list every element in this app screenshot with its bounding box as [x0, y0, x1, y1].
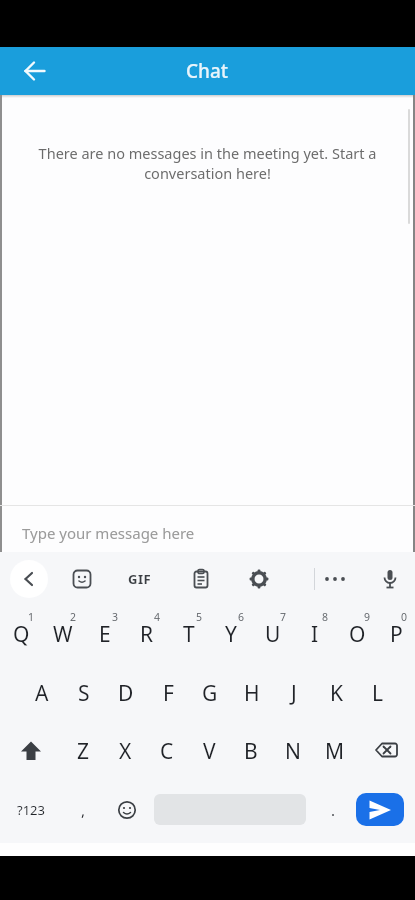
staticText: GIF	[128, 570, 152, 588]
staticText: 7	[280, 610, 287, 624]
button[interactable]: T	[168, 605, 210, 664]
staticText: 6	[238, 610, 245, 624]
button[interactable]	[315, 559, 355, 599]
button[interactable]	[10, 560, 48, 598]
button[interactable]: A	[21, 664, 63, 722]
button[interactable]: X	[104, 722, 146, 780]
button[interactable]: V	[188, 722, 230, 780]
button[interactable]: W	[42, 605, 84, 664]
button[interactable]: M	[314, 722, 356, 780]
staticText: R	[140, 620, 154, 649]
staticText: K	[330, 679, 343, 708]
staticText: F	[163, 679, 174, 708]
button[interactable]: J	[273, 664, 315, 722]
button[interactable]: G	[189, 664, 231, 722]
button[interactable]: F	[147, 664, 189, 722]
button[interactable]: Z	[62, 722, 104, 780]
staticText: ?123	[17, 801, 45, 819]
staticText: J	[291, 679, 297, 708]
button[interactable]: E	[84, 605, 126, 664]
staticText: G	[202, 679, 218, 708]
staticText: L	[372, 679, 384, 708]
staticText: 4	[154, 610, 161, 624]
staticText: 3	[112, 610, 119, 624]
staticText: 2	[70, 610, 77, 624]
staticText: M	[325, 737, 345, 766]
button[interactable]: D	[105, 664, 147, 722]
button[interactable]: R	[126, 605, 168, 664]
staticText: C	[160, 737, 174, 766]
button[interactable]	[356, 722, 415, 780]
button[interactable]: L	[357, 664, 399, 722]
staticText: 5	[196, 610, 203, 624]
staticText: ,	[81, 800, 86, 820]
staticText: 9	[364, 610, 371, 624]
staticText: P	[390, 620, 403, 649]
staticText: .	[331, 800, 336, 820]
button[interactable]: GIF	[120, 559, 160, 599]
button[interactable]: ,	[62, 780, 104, 839]
button[interactable]: C	[146, 722, 188, 780]
staticText: Z	[77, 737, 90, 766]
button[interactable]	[0, 47, 56, 95]
button[interactable]: S	[63, 664, 105, 722]
staticText: Type your message here	[22, 523, 195, 543]
button[interactable]: O	[336, 605, 378, 664]
staticText: 1	[28, 610, 35, 624]
staticText: Y	[225, 620, 237, 649]
staticText: 8	[322, 610, 329, 624]
staticText: Q	[13, 620, 30, 649]
staticText: T	[183, 620, 195, 649]
staticText: W	[53, 620, 73, 649]
staticText: conversation here!	[0, 163, 415, 183]
staticText: There are no messages in the meeting yet…	[0, 143, 415, 163]
button[interactable]	[62, 559, 102, 599]
staticText: E	[99, 620, 111, 649]
staticText: H	[244, 679, 260, 708]
staticText: 0	[401, 610, 408, 624]
button[interactable]: Y	[210, 605, 252, 664]
staticText: X	[119, 737, 132, 766]
button[interactable]: .	[310, 780, 356, 839]
button[interactable]	[0, 722, 62, 780]
button[interactable]: Type your message here	[0, 506, 415, 552]
staticText: U	[265, 620, 281, 649]
button[interactable]: H	[231, 664, 273, 722]
button[interactable]	[181, 559, 221, 599]
button[interactable]: ?123	[0, 780, 62, 839]
button[interactable]	[239, 559, 279, 599]
staticText: A	[35, 679, 49, 708]
staticText: I	[311, 620, 319, 649]
button[interactable]	[104, 780, 150, 839]
button[interactable]: U	[252, 605, 294, 664]
staticText: D	[118, 679, 134, 708]
staticText: B	[244, 737, 258, 766]
button[interactable]: N	[272, 722, 314, 780]
button[interactable]: I	[294, 605, 336, 664]
button[interactable]: B	[230, 722, 272, 780]
staticText: S	[78, 679, 90, 708]
button[interactable]	[370, 559, 410, 599]
staticText: Chat	[186, 58, 229, 84]
button[interactable]: P	[378, 605, 415, 664]
button[interactable]	[356, 793, 404, 826]
button[interactable]: K	[315, 664, 357, 722]
button[interactable]: Q	[0, 605, 42, 664]
staticText: O	[349, 620, 366, 649]
staticText: N	[285, 737, 301, 766]
staticText: V	[203, 737, 216, 766]
